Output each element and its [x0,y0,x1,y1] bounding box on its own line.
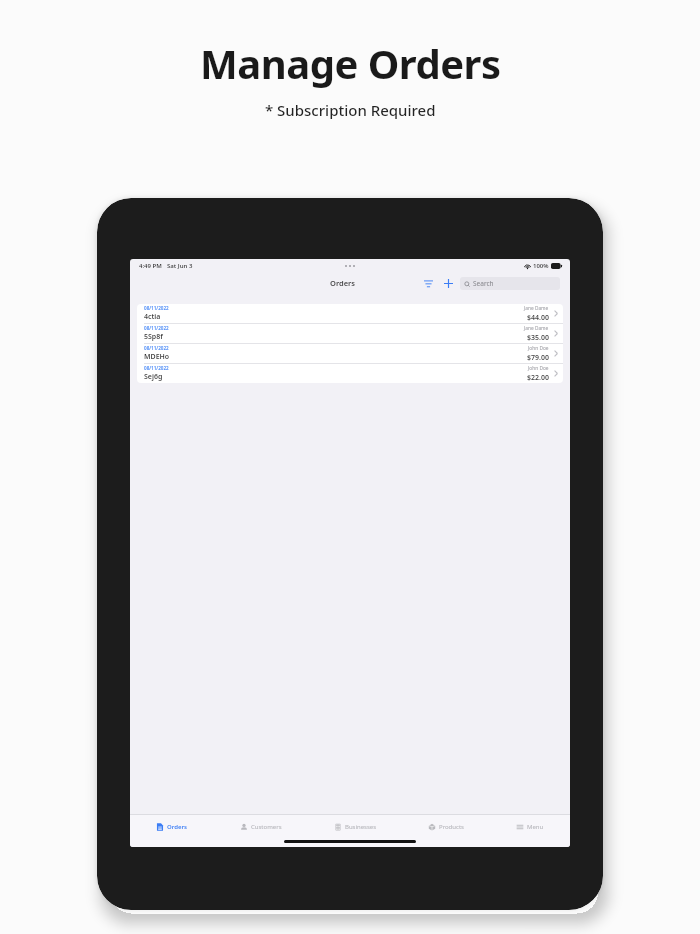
button[interactable]: Filter [420,275,436,291]
staticText: 100% [533,262,549,270]
staticText: $44.00 [527,313,549,323]
button[interactable]: 08/11/2022 [137,344,563,363]
staticText: 08/11/2022 [144,325,169,331]
staticText: Sat Jun 3 [167,262,193,270]
staticText: John Doe [528,345,549,352]
staticText: $35.00 [527,333,549,343]
staticText: Orders [330,278,356,288]
button[interactable]: Products [426,815,466,839]
staticText: 5Sp8f [144,332,163,342]
button[interactable]: 08/11/2022 [137,304,563,323]
staticText: Jane Dame [524,325,549,332]
staticText: 08/11/2022 [144,305,169,311]
staticText: Search [473,279,494,288]
staticText: 08/11/2022 [144,345,169,351]
button[interactable]: Menu [514,815,546,839]
staticText: Products [439,823,464,831]
staticText: John Doe [528,365,549,372]
staticText: $79.00 [527,353,549,363]
button[interactable]: Businesses [332,815,379,839]
staticText: Customers [251,823,282,831]
staticText: MDEHo [144,352,170,362]
staticText: Orders [167,823,188,831]
button[interactable]: Orders [154,815,190,839]
staticText: 08/11/2022 [144,365,169,371]
staticText: Sej6g [144,372,163,382]
button[interactable]: 08/11/2022 [137,324,563,343]
button[interactable]: 08/11/2022 [137,364,563,383]
staticText: * Subscription Required [265,100,436,120]
staticText: Jane Dame [524,305,549,312]
button[interactable]: Search [460,277,560,290]
staticText: Manage Orders [200,36,501,90]
staticText: 4:49 PM [139,262,162,270]
staticText: Businesses [345,823,377,831]
button[interactable]: Customers [238,815,284,839]
staticText: 4ctia [144,312,161,322]
staticText: Menu [527,823,544,831]
button[interactable]: Add order [440,275,456,291]
staticText: $22.00 [527,373,549,383]
